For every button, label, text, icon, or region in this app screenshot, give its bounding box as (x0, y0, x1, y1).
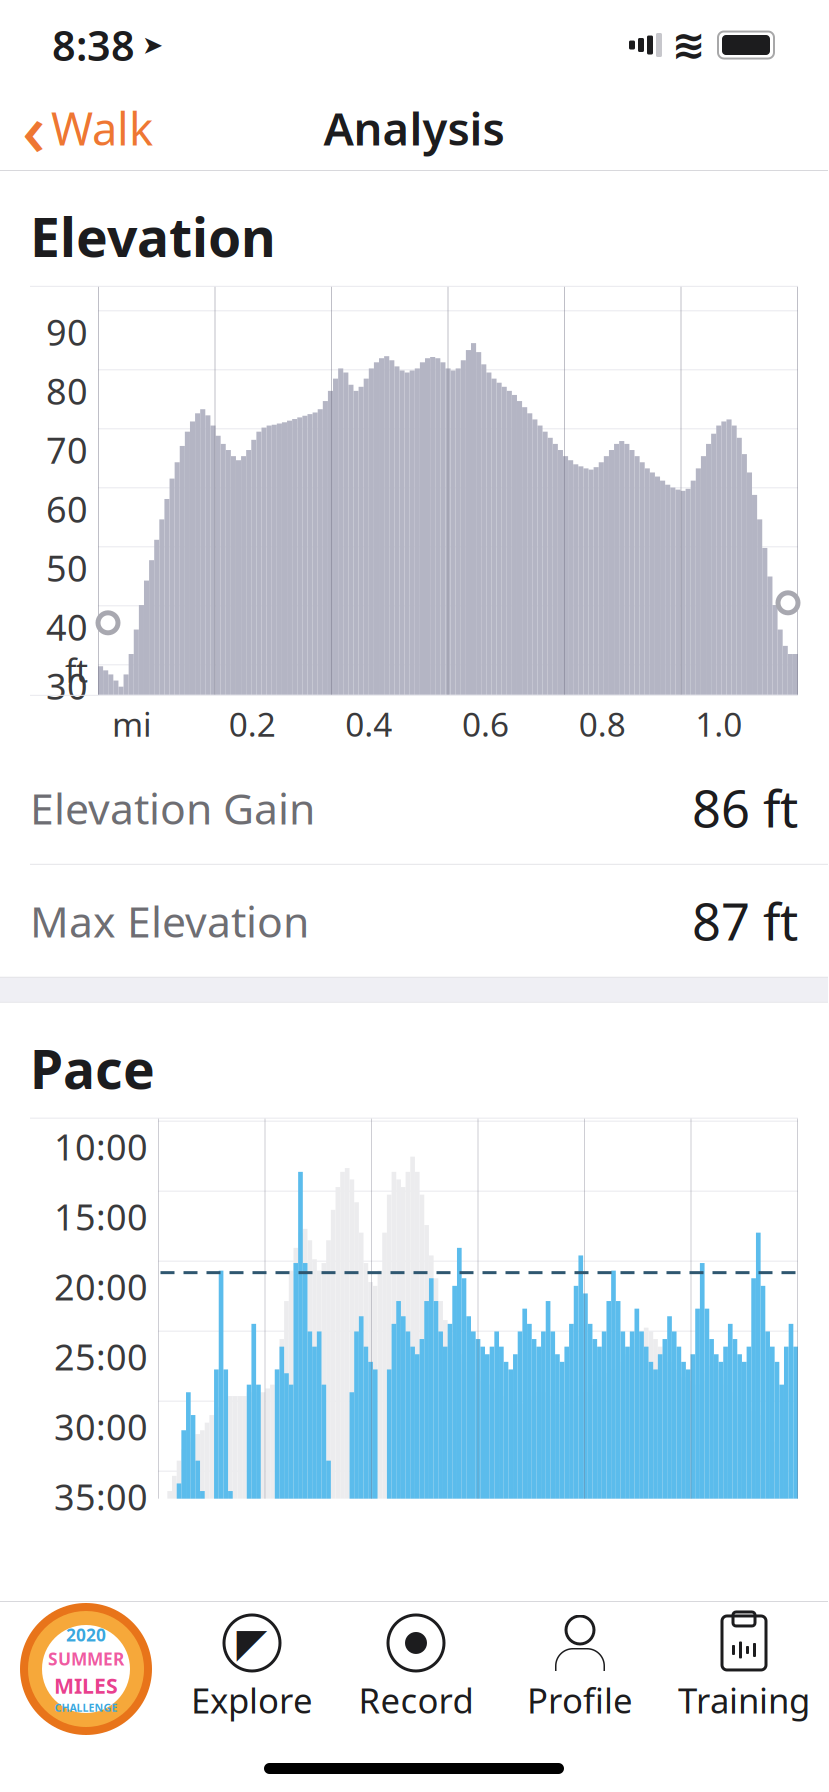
staticText: 0.8 (579, 702, 626, 746)
staticText: MILES (54, 1671, 118, 1700)
staticText: Profile (527, 1677, 633, 1723)
staticText: 10:00 (54, 1123, 148, 1170)
button[interactable]: ‹ (0, 90, 175, 166)
staticText: CHALLENGE (54, 1701, 117, 1715)
staticText: ≋ (672, 22, 706, 68)
staticText: 40 (46, 603, 88, 651)
staticText: Max Elevation (30, 892, 309, 949)
staticText: 25:00 (54, 1333, 148, 1380)
button[interactable]: 2020 Summer Miles Challenge (2, 1602, 170, 1736)
staticText: 20:00 (54, 1263, 148, 1310)
staticText: 50 (46, 544, 88, 592)
staticText: 60 (46, 485, 88, 533)
staticText: Record (358, 1677, 473, 1723)
staticText: ft (65, 648, 88, 692)
staticText: 1.0 (695, 702, 742, 746)
staticText: 30:00 (54, 1403, 148, 1450)
button[interactable]: Training (662, 1607, 826, 1731)
staticText: 86 ft (692, 774, 798, 841)
staticText: Explore (191, 1677, 313, 1723)
button[interactable]: ◤ (170, 1607, 334, 1731)
staticText: 15:00 (54, 1193, 148, 1240)
button[interactable]: Profile (498, 1607, 662, 1731)
staticText: 2020 (66, 1623, 106, 1646)
staticText: Analysis (323, 98, 504, 158)
staticText: 90 (46, 308, 88, 356)
staticText: 0.6 (462, 702, 509, 746)
staticText: ➤ (142, 31, 163, 59)
staticText: 0.2 (229, 702, 276, 746)
staticText: 35:00 (54, 1473, 148, 1520)
button[interactable]: Record (334, 1607, 498, 1731)
staticText: 87 ft (692, 887, 798, 954)
staticText: 70 (46, 426, 88, 474)
staticText: ◤ (236, 1620, 267, 1666)
staticText: mi (112, 702, 152, 746)
staticText: Pace (30, 1033, 155, 1104)
staticText: 8:38 (52, 18, 135, 72)
staticText: Elevation (30, 201, 276, 272)
staticText: 0.4 (345, 702, 392, 746)
staticText: SUMMER (48, 1647, 124, 1670)
staticText: ‹ (22, 80, 45, 176)
staticText: 80 (46, 367, 88, 415)
staticText: Elevation Gain (30, 779, 315, 836)
staticText: 30 (46, 662, 88, 710)
staticText: Training (678, 1677, 810, 1723)
staticText: Walk (51, 98, 153, 158)
